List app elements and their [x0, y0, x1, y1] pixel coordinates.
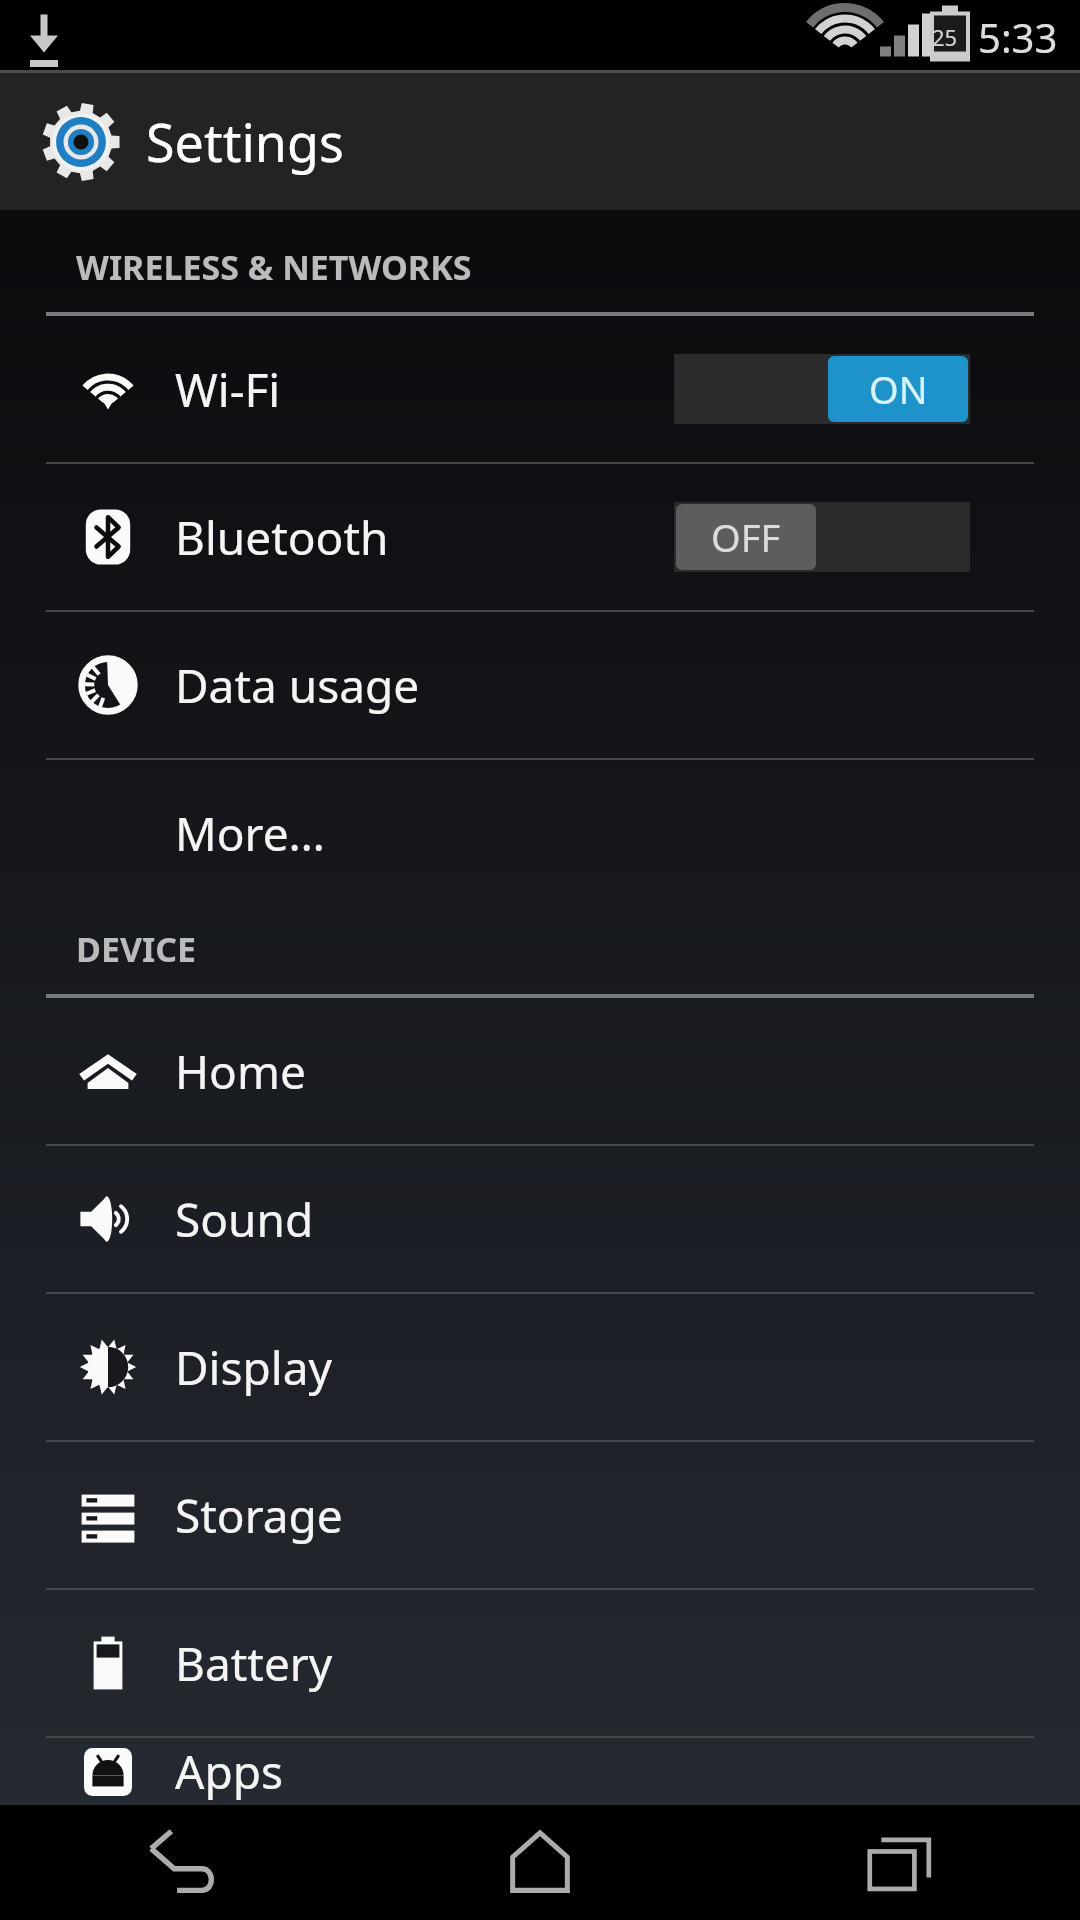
button[interactable]: Storage [0, 1442, 1080, 1588]
button[interactable]: Sound [0, 1146, 1080, 1292]
button[interactable]: Display [0, 1294, 1080, 1440]
staticText: 5:33 [978, 10, 1058, 64]
button[interactable]: Home [360, 1805, 720, 1920]
staticText: Display [175, 1336, 332, 1399]
button[interactable]: Wi-Fi [0, 316, 1080, 462]
staticText: 25 [932, 22, 958, 52]
staticText: Sound [175, 1188, 314, 1251]
button[interactable]: Bluetooth switch [674, 502, 970, 572]
button[interactable]: Battery [0, 1590, 1080, 1736]
button[interactable]: Back [0, 1805, 360, 1920]
button[interactable]: Apps [0, 1738, 1080, 1805]
staticText: ON [869, 363, 928, 415]
button[interactable]: Bluetooth [0, 464, 1080, 610]
staticText: Apps [175, 1740, 284, 1803]
button[interactable]: More… [0, 760, 1080, 906]
staticText: Wi-Fi [175, 358, 281, 421]
staticText: More… [175, 802, 325, 865]
staticText: WIRELESS & NETWORKS [76, 244, 472, 290]
staticText: OFF [711, 511, 781, 563]
button[interactable]: Recent apps [720, 1805, 1080, 1920]
button[interactable]: Home [0, 998, 1080, 1144]
staticText: Settings [146, 106, 344, 177]
staticText: Data usage [175, 654, 420, 717]
staticText: Battery [175, 1632, 333, 1695]
button[interactable]: Settings [0, 73, 1080, 210]
staticText: Storage [175, 1484, 343, 1547]
button[interactable]: Data usage [0, 612, 1080, 758]
staticText: Bluetooth [175, 506, 389, 569]
staticText: DEVICE [76, 926, 197, 972]
button[interactable]: Wi-Fi switch [674, 354, 970, 424]
staticText: Home [175, 1040, 306, 1103]
